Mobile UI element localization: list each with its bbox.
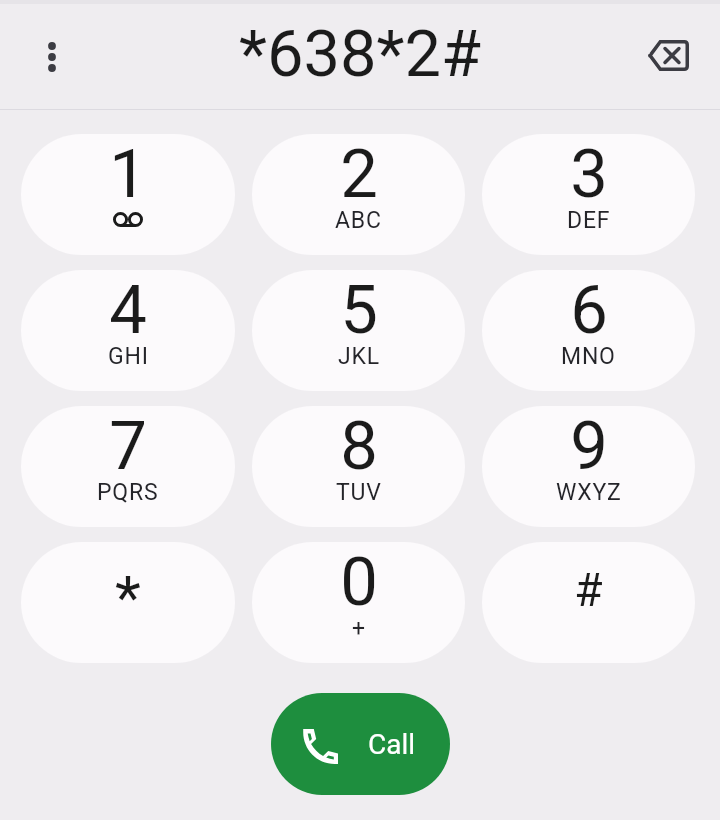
button[interactable]: 1 (21, 134, 235, 255)
staticText: WXYZ (556, 479, 622, 506)
staticText: MNO (561, 343, 616, 370)
staticText: TUV (336, 479, 382, 506)
button[interactable]: 9 (482, 406, 695, 527)
staticText: 1 (109, 135, 147, 214)
staticText: 4 (109, 271, 147, 350)
staticText: *638*2# (239, 16, 482, 92)
staticText: 6 (570, 271, 608, 350)
button[interactable]: 6 (482, 270, 695, 391)
button[interactable]: Backspace (640, 27, 696, 83)
button[interactable]: More options (28, 31, 76, 79)
button[interactable]: # (482, 542, 695, 663)
staticText: 3 (570, 135, 608, 214)
button[interactable]: 8 (252, 406, 465, 527)
staticText: 0 (340, 543, 378, 622)
staticText: + (352, 615, 366, 642)
staticText: 2 (340, 135, 378, 214)
button[interactable]: * (21, 542, 235, 663)
staticText: ABC (335, 207, 382, 234)
staticText: 5 (340, 271, 378, 350)
staticText: DEF (567, 207, 611, 234)
staticText: Call (368, 728, 416, 761)
button[interactable]: 5 (252, 270, 465, 391)
staticText: GHI (108, 343, 149, 370)
staticText: PQRS (97, 479, 159, 506)
button[interactable]: 4 (21, 270, 235, 391)
staticText: 8 (340, 407, 378, 486)
staticText: 7 (109, 407, 147, 486)
button[interactable]: 7 (21, 406, 235, 527)
button[interactable]: 3 (482, 134, 695, 255)
button[interactable]: Call (271, 693, 450, 795)
staticText: * (115, 562, 141, 632)
button[interactable]: 0 (252, 542, 465, 663)
staticText: 9 (570, 407, 608, 486)
staticText: JKL (338, 343, 380, 370)
staticText: # (574, 563, 603, 617)
button[interactable]: 2 (252, 134, 465, 255)
